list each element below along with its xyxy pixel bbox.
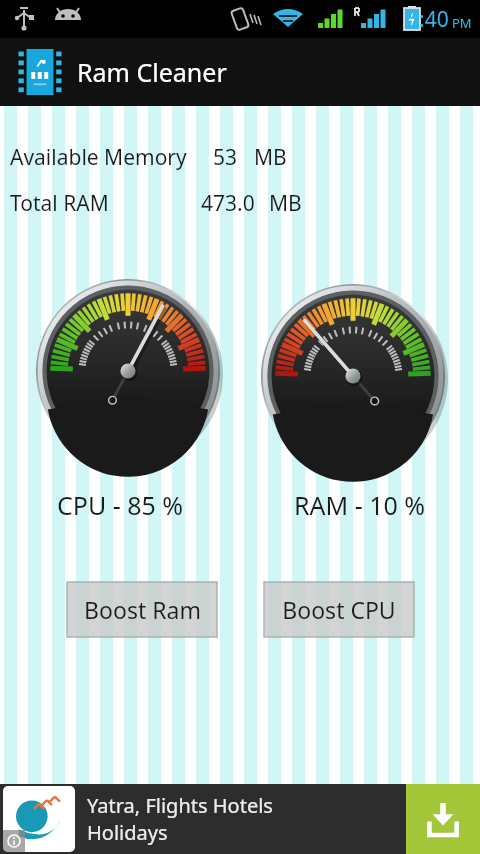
staticText: CPU - 85 % xyxy=(57,488,184,522)
button[interactable]: Boost Ram xyxy=(67,582,217,637)
staticText: 53 xyxy=(213,143,238,172)
staticText: Available Memory xyxy=(10,143,187,172)
staticText: PM xyxy=(452,14,472,32)
staticText: MB xyxy=(269,189,302,218)
staticText: 473.0 xyxy=(201,189,255,218)
staticText: Total RAM xyxy=(10,189,109,218)
button[interactable]: Yatra, Flights Hotels xyxy=(0,784,480,854)
staticText: RAM - 10 % xyxy=(294,488,426,522)
staticText: Ram Cleaner xyxy=(77,55,227,89)
staticText: Holidays xyxy=(87,819,168,846)
staticText: 5:40 xyxy=(407,5,449,34)
staticText: Boost Ram xyxy=(84,594,201,625)
button[interactable]: Boost CPU xyxy=(264,582,414,637)
staticText: Yatra, Flights Hotels xyxy=(87,792,273,819)
button[interactable]: Install app xyxy=(406,784,480,854)
staticText: MB xyxy=(254,143,287,172)
staticText: Boost CPU xyxy=(282,594,396,625)
